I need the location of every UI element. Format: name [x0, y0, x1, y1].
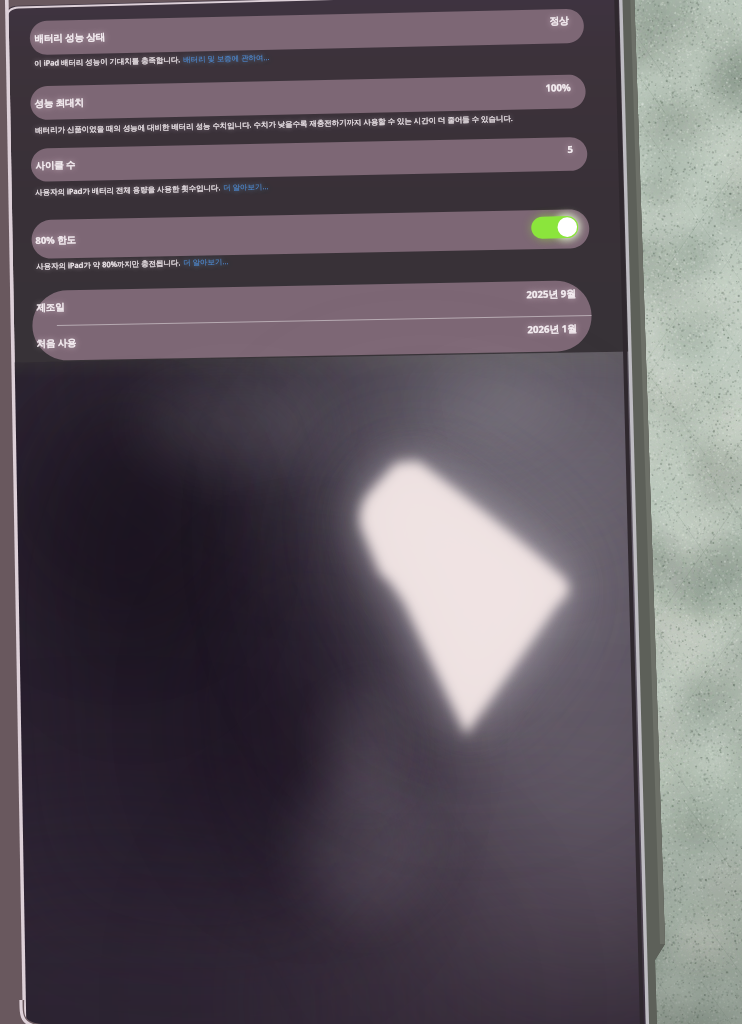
staticText: 100% [545, 81, 571, 95]
button[interactable]: 배터리 및 보증에 관하여... [183, 52, 270, 64]
staticText: 처음 사용 [36, 336, 78, 350]
button[interactable]: 80% 한도 [35, 218, 276, 256]
button[interactable]: 처음 사용 [36, 321, 277, 359]
staticText: 정상 [549, 15, 569, 27]
button[interactable]: 사이클 수 [35, 143, 276, 181]
staticText: 이 iPad 배터리 성능이 기대치를 충족합니다. [34, 54, 183, 68]
staticText: 성능 최대치 [34, 96, 85, 110]
button[interactable]: 제조일 [36, 286, 277, 324]
staticText: 제조일 [36, 301, 66, 314]
button[interactable]: 성능 최대치 [34, 81, 275, 119]
button[interactable]: 더 알아보기... [223, 181, 269, 192]
button[interactable]: 80% 한도 토글 [531, 216, 578, 239]
staticText: 5 [567, 143, 573, 156]
staticText: 배터리가 신품이었을 때의 성능에 대비한 배터리 성능 수치입니다. 수치가 … [35, 113, 513, 135]
button[interactable]: 배터리 성능 상태 [34, 16, 275, 54]
staticText: 2025년 9월 [526, 287, 576, 301]
staticText: 사용자의 iPad가 약 80%까지만 충전됩니다. [36, 257, 183, 271]
staticText: 배터리 성능 상태 [34, 30, 106, 45]
staticText: 2026년 1월 [527, 322, 577, 336]
staticText: 사용자의 iPad가 배터리 전체 용량을 사용한 횟수입니다. [35, 182, 223, 197]
button[interactable]: 더 알아보기... [183, 256, 229, 267]
staticText: 사이클 수 [35, 158, 77, 172]
staticText: 80% 한도 [35, 233, 77, 247]
